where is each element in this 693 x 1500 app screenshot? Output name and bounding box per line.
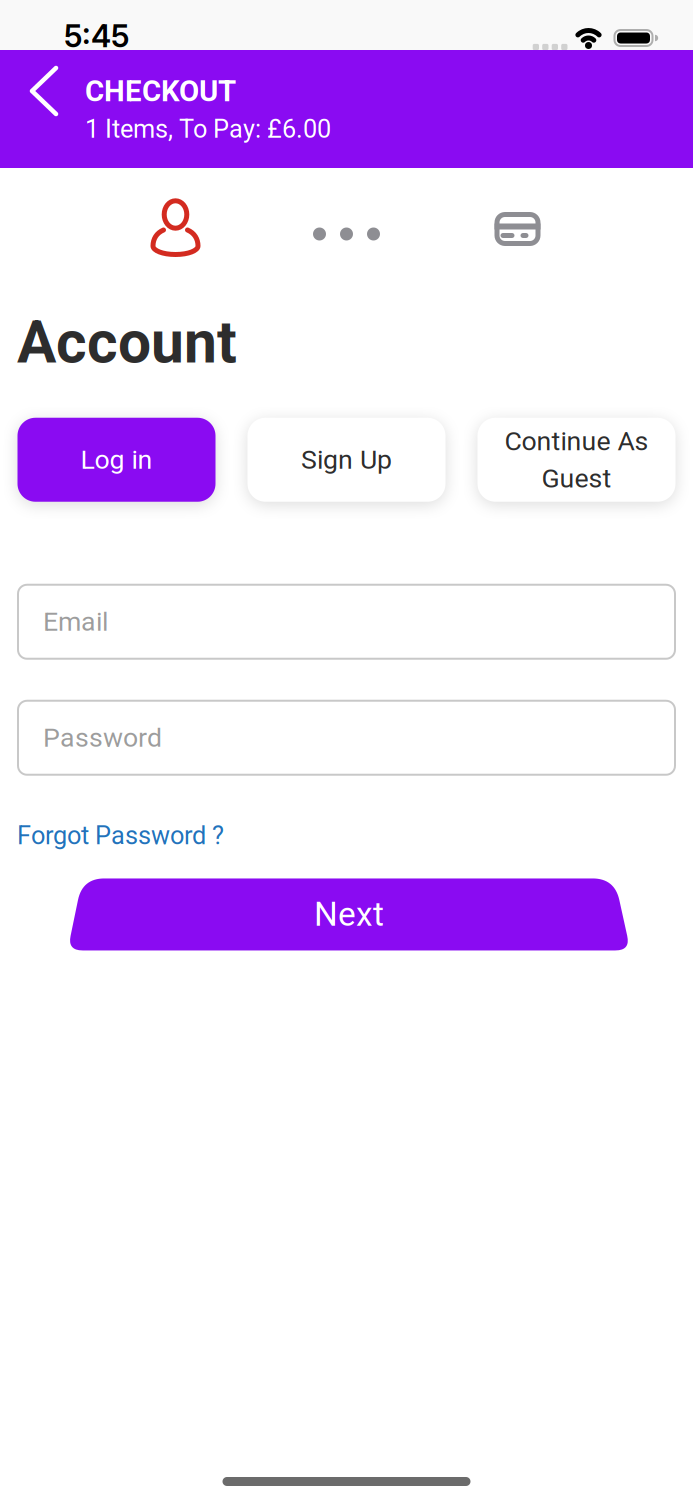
staticText: Sign Up xyxy=(301,444,392,475)
staticText: Continue As xyxy=(504,425,648,457)
staticText: Email xyxy=(43,606,108,637)
staticText: Forgot Password ? xyxy=(17,821,224,850)
button[interactable]: Sign Up xyxy=(247,418,445,502)
button[interactable]: Next xyxy=(65,878,628,950)
staticText: Log in xyxy=(80,444,152,475)
button[interactable]: Back xyxy=(24,61,72,121)
staticText: CHECKOUT xyxy=(85,74,236,108)
staticText: 1 Items, To Pay: £6.00 xyxy=(85,114,331,144)
button[interactable]: Email xyxy=(17,584,676,660)
button[interactable]: Password xyxy=(17,700,676,776)
staticText: 5:45 xyxy=(64,17,129,54)
staticText: Next xyxy=(314,895,384,934)
button[interactable]: Continue As xyxy=(477,418,675,502)
button[interactable]: Forgot Password ? xyxy=(17,821,224,850)
staticText: Guest xyxy=(541,463,611,494)
staticText: Account xyxy=(17,308,237,377)
button[interactable]: Log in xyxy=(17,418,215,502)
staticText: Password xyxy=(43,722,162,753)
